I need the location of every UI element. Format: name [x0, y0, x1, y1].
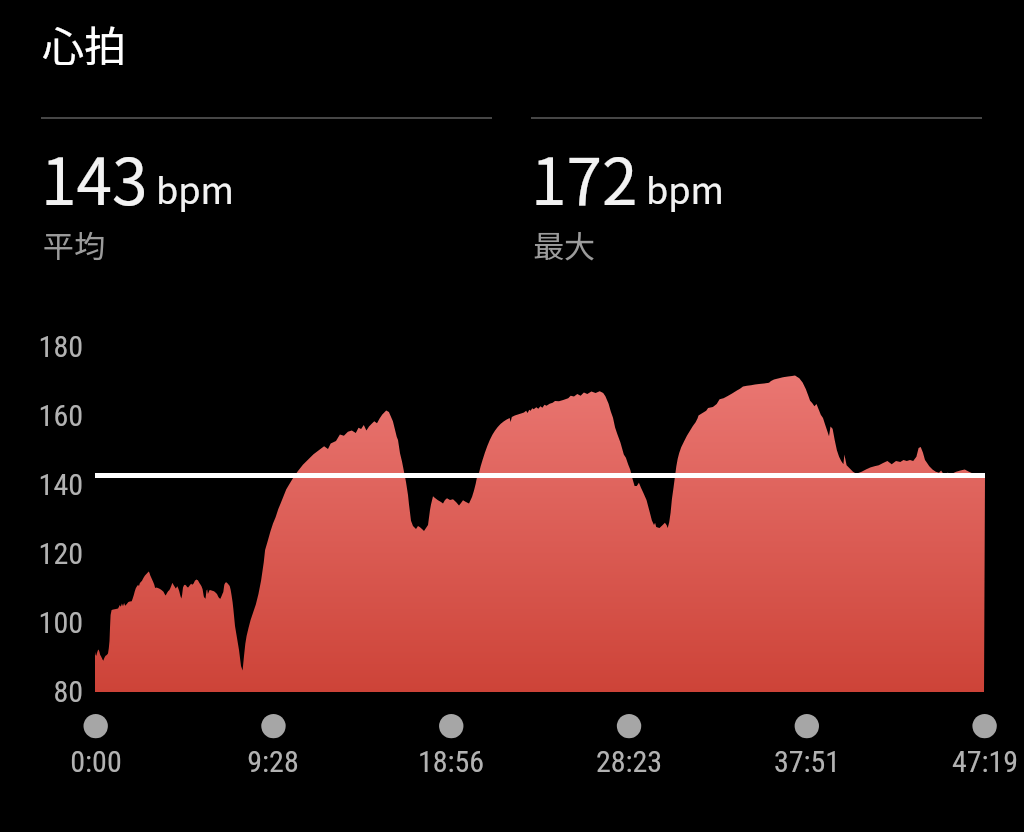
- staticText: 47:19: [915, 744, 1024, 779]
- button[interactable]: 172: [531, 116, 982, 266]
- staticText: 37:51: [737, 744, 877, 779]
- staticText: bpm: [646, 162, 724, 214]
- staticText: 143: [41, 131, 148, 224]
- staticText: 18:56: [381, 744, 521, 779]
- staticText: 0:00: [26, 744, 166, 779]
- staticText: 160: [0, 398, 83, 433]
- staticText: 120: [0, 536, 83, 571]
- staticText: 平均: [43, 222, 105, 267]
- staticText: 140: [0, 467, 83, 502]
- staticText: 28:23: [559, 744, 699, 779]
- staticText: 9:28: [203, 744, 343, 779]
- staticText: 心拍: [42, 13, 127, 74]
- other: Heart rate chart: [0, 0, 1024, 832]
- staticText: 172: [531, 131, 638, 224]
- staticText: bpm: [156, 162, 234, 214]
- staticText: 80: [0, 674, 83, 709]
- button[interactable]: 143: [41, 116, 492, 266]
- staticText: 最大: [533, 222, 595, 267]
- staticText: 180: [0, 329, 83, 364]
- staticText: 100: [0, 605, 83, 640]
